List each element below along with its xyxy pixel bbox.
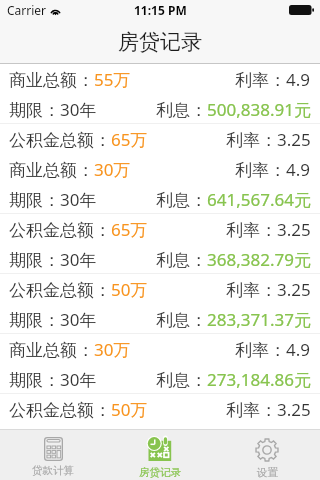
staticText: 利息：641,567.64元: [156, 188, 311, 211]
staticText: 房贷记录: [118, 29, 202, 55]
staticText: 期限：30年: [9, 188, 97, 211]
staticText: 利率：4.9: [235, 68, 311, 91]
staticText: 公积金总额：50万: [9, 278, 148, 301]
staticText: 利息：273,184.86元: [156, 368, 311, 391]
button[interactable]: 贷款计算: [0, 429, 106, 480]
staticText: Carrier: [7, 2, 47, 18]
staticText: 设置: [257, 466, 278, 479]
staticText: 商业总额：30万: [9, 338, 131, 361]
button[interactable]: 商业总额：55万: [0, 64, 320, 94]
staticText: 公积金总额：65万: [9, 128, 148, 151]
button[interactable]: 期限：30年: [0, 184, 320, 214]
staticText: 利息：283,371.37元: [156, 308, 311, 331]
button[interactable]: 商业总额：30万: [0, 334, 320, 364]
staticText: 利率：3.25: [226, 398, 311, 421]
staticText: 商业总额：30万: [9, 158, 131, 181]
button[interactable]: 公积金总额：50万: [0, 394, 320, 424]
staticText: 利息：368,382.79元: [156, 248, 311, 271]
staticText: 利率：3.25: [226, 218, 311, 241]
staticText: 期限：30年: [9, 308, 97, 331]
staticText: 利率：4.9: [235, 338, 311, 361]
staticText: 期限：30年: [9, 98, 97, 121]
staticText: 利息：500,838.91元: [156, 98, 311, 121]
staticText: 利率：3.25: [226, 128, 311, 151]
button[interactable]: 设置: [213, 429, 320, 480]
staticText: 利率：4.9: [235, 158, 311, 181]
button[interactable]: 公积金总额：65万: [0, 124, 320, 154]
button[interactable]: 期限：30年: [0, 244, 320, 274]
staticText: 11:15 PM: [134, 2, 187, 18]
button[interactable]: 期限：30年: [0, 94, 320, 124]
staticText: 期限：30年: [9, 368, 97, 391]
button[interactable]: 商业总额：30万: [0, 154, 320, 184]
staticText: 公积金总额：50万: [9, 398, 148, 421]
staticText: 贷款计算: [32, 464, 74, 477]
staticText: 公积金总额：65万: [9, 218, 148, 241]
button[interactable]: 公积金总额：65万: [0, 214, 320, 244]
staticText: 商业总额：55万: [9, 68, 131, 91]
button[interactable]: 房贷记录: [106, 429, 213, 480]
staticText: 利率：3.25: [226, 278, 311, 301]
staticText: 期限：30年: [9, 248, 97, 271]
staticText: 房贷记录: [139, 466, 181, 479]
button[interactable]: 期限：30年: [0, 364, 320, 394]
button[interactable]: 期限：30年: [0, 304, 320, 334]
button[interactable]: 公积金总额：50万: [0, 274, 320, 304]
